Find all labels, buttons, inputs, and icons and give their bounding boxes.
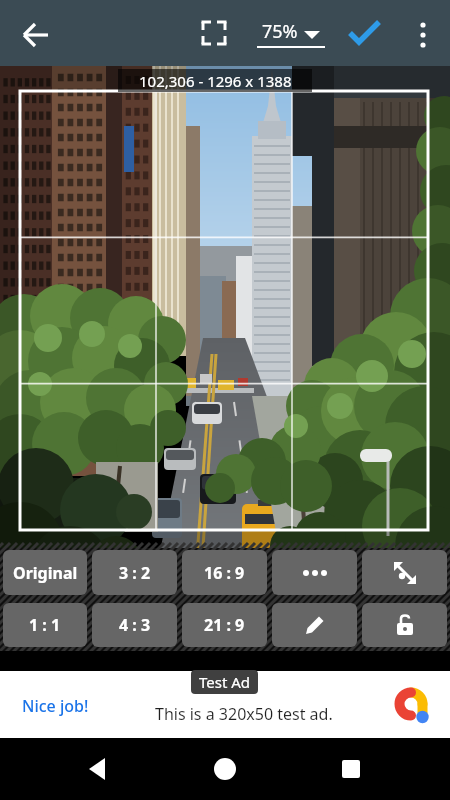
button[interactable] (272, 550, 357, 595)
staticText: Test Ad (199, 672, 251, 692)
button[interactable]: 21 : 9 (182, 603, 267, 647)
button[interactable]: 4 : 3 (92, 603, 177, 647)
button[interactable]: Original (3, 550, 87, 595)
staticText: 21 : 9 (204, 614, 245, 636)
button[interactable] (205, 749, 245, 789)
button[interactable]: Nice job! (0, 671, 450, 738)
button[interactable] (331, 749, 371, 789)
button[interactable] (16, 15, 56, 55)
button[interactable]: 3 : 2 (92, 550, 177, 595)
staticText: 102,306 - 1296 x 1388 (139, 71, 292, 91)
button[interactable]: 75% (252, 12, 330, 54)
button[interactable]: 1 : 1 (3, 603, 87, 647)
button[interactable] (362, 550, 447, 595)
button[interactable] (406, 10, 440, 56)
staticText: 3 : 2 (119, 562, 151, 584)
button[interactable] (272, 603, 357, 647)
staticText: Nice job! (22, 695, 89, 717)
button[interactable] (362, 603, 447, 647)
staticText: 16 : 9 (204, 562, 245, 584)
staticText: 1 : 1 (29, 614, 61, 636)
staticText: 4 : 3 (119, 614, 151, 636)
button[interactable] (79, 749, 119, 789)
button[interactable] (198, 18, 230, 50)
staticText: Original (13, 562, 78, 584)
button[interactable]: 16 : 9 (182, 550, 267, 595)
staticText: 75% (262, 19, 298, 44)
staticText: This is a 320x50 test ad. (155, 703, 333, 725)
button[interactable] (343, 14, 385, 52)
